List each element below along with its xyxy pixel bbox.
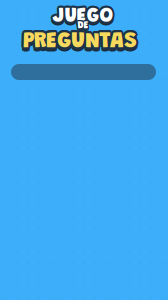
staticText: JUEGO — [51, 5, 112, 26]
staticText: PREGUNTAS — [25, 31, 139, 53]
staticText: JUEGO — [51, 10, 112, 30]
staticText: DE — [76, 21, 87, 31]
staticText: PREGUNTAS — [24, 28, 138, 51]
staticText: JUEGO — [54, 7, 115, 27]
staticText: DE — [77, 23, 88, 33]
staticText: JUEGO — [52, 11, 113, 31]
staticText: PREGUNTAS — [23, 33, 137, 55]
staticText: JUEGO — [54, 5, 115, 26]
staticText: DE — [77, 22, 88, 32]
staticText: JUEGO — [51, 8, 112, 28]
staticText: PREGUNTAS — [21, 31, 135, 53]
staticText: PREGUNTAS — [23, 31, 137, 53]
staticText: DE — [77, 20, 88, 30]
staticText: PREGUNTAS — [25, 29, 139, 52]
staticText: DE — [77, 22, 88, 32]
staticText: PREGUNTAS — [21, 29, 135, 52]
staticText: JUEGO — [54, 8, 115, 28]
staticText: DE — [78, 20, 89, 30]
staticText: JUEGO — [53, 9, 114, 29]
staticText: DE — [78, 22, 89, 32]
staticText: PREGUNTAS — [24, 33, 138, 55]
staticText: DE — [76, 22, 87, 32]
staticText: DE — [77, 21, 88, 31]
staticText: DE — [78, 23, 89, 33]
staticText: PREGUNTAS — [23, 35, 137, 57]
staticText: PREGUNTAS — [22, 28, 136, 51]
staticText: DE — [76, 20, 87, 30]
staticText: JUEGO — [52, 9, 113, 29]
staticText: JUEGO — [52, 5, 113, 25]
staticText: JUEGO — [54, 10, 115, 30]
staticText: PREGUNTAS — [22, 33, 136, 55]
staticText: DE — [79, 21, 90, 31]
staticText: PREGUNTAS — [21, 34, 135, 57]
staticText: PREGUNTAS — [23, 28, 137, 51]
staticText: JUEGO — [52, 7, 113, 27]
staticText: DE — [78, 20, 89, 30]
staticText: DE — [76, 23, 87, 33]
staticText: DE — [77, 20, 88, 30]
staticText: JUEGO — [53, 5, 114, 25]
staticText: PREGUNTAS — [25, 34, 139, 57]
staticText: PREGUNTAS — [25, 32, 139, 55]
staticText: PREGUNTAS — [21, 32, 135, 55]
staticText: DE — [78, 22, 89, 32]
staticText: JUEGO — [52, 9, 113, 29]
staticText: JUEGO — [50, 7, 111, 27]
staticText: JUEGO — [52, 5, 113, 25]
